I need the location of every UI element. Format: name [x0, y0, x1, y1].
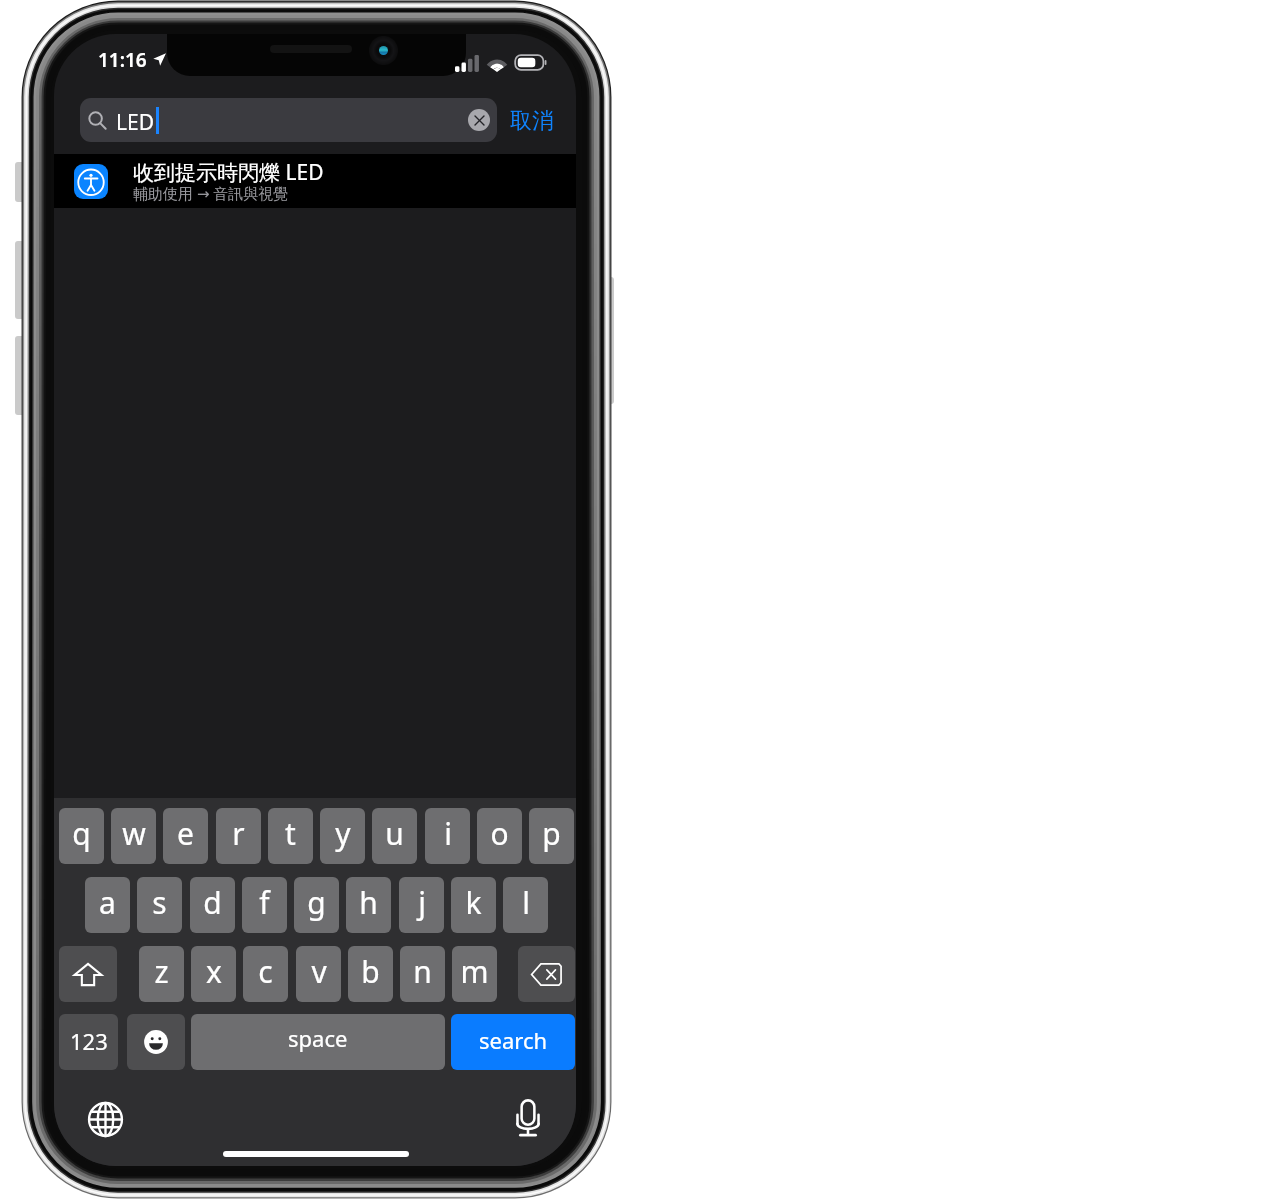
staticText: 123 [70, 1026, 108, 1056]
staticText: h [359, 882, 378, 923]
button[interactable]: u [372, 808, 417, 864]
button[interactable]: Backspace [518, 946, 575, 1002]
staticText: i [444, 813, 452, 854]
staticText: n [413, 951, 432, 992]
button[interactable]: 收到提示時閃爍 LED [54, 154, 576, 208]
button[interactable]: space [191, 1014, 445, 1070]
button[interactable]: t [268, 808, 313, 864]
button[interactable]: 123 [59, 1014, 118, 1070]
staticText: e [177, 813, 194, 854]
button[interactable]: x [191, 946, 236, 1002]
button[interactable]: Emoji keyboard [127, 1014, 185, 1070]
button[interactable]: a [85, 877, 130, 933]
button[interactable]: q [59, 808, 104, 864]
button[interactable]: d [190, 877, 235, 933]
staticText: 取消 [510, 107, 554, 135]
button[interactable]: b [348, 946, 393, 1002]
button[interactable]: p [529, 808, 574, 864]
staticText: m [460, 951, 489, 992]
staticText: p [542, 813, 561, 854]
button[interactable]: n [400, 946, 445, 1002]
button[interactable]: z [139, 946, 184, 1002]
button[interactable]: e [163, 808, 208, 864]
staticText: f [259, 882, 270, 923]
button[interactable]: w [111, 808, 156, 864]
staticText: LED [116, 108, 155, 137]
staticText: o [490, 813, 509, 854]
button[interactable]: m [452, 946, 497, 1002]
button[interactable]: g [294, 877, 339, 933]
staticText: v [311, 951, 327, 992]
staticText: l [522, 882, 530, 923]
staticText: r [232, 813, 245, 854]
staticText: q [72, 813, 91, 854]
button[interactable]: Dictation [508, 1098, 548, 1138]
staticText: a [99, 882, 116, 923]
staticText: c [258, 951, 273, 992]
button[interactable]: i [425, 808, 470, 864]
staticText: space [288, 1023, 348, 1053]
staticText: j [418, 882, 426, 923]
staticText: t [285, 813, 296, 854]
staticText: u [385, 813, 404, 854]
button[interactable]: y [320, 808, 365, 864]
button[interactable]: Clear text [468, 109, 490, 131]
button[interactable]: s [137, 877, 182, 933]
button[interactable]: r [216, 808, 261, 864]
staticText: d [203, 882, 222, 923]
staticText: s [152, 882, 167, 923]
staticText: 收到提示時閃爍 LED [133, 158, 324, 187]
button[interactable]: v [296, 946, 341, 1002]
button[interactable]: search [451, 1014, 575, 1070]
staticText: x [206, 951, 222, 992]
staticText: k [465, 882, 482, 923]
button[interactable]: f [242, 877, 287, 933]
staticText: w [122, 813, 146, 854]
staticText: g [307, 882, 326, 923]
staticText: y [335, 813, 351, 854]
button[interactable]: 取消 [504, 98, 560, 142]
button[interactable]: Change keyboard language [85, 1099, 125, 1139]
button[interactable]: c [243, 946, 288, 1002]
staticText: 11:16 [98, 47, 147, 73]
button[interactable]: Shift [59, 946, 117, 1002]
staticText: z [154, 951, 169, 992]
button[interactable]: l [503, 877, 548, 933]
button[interactable]: j [399, 877, 444, 933]
button[interactable]: k [451, 877, 496, 933]
button[interactable]: o [477, 808, 522, 864]
button[interactable]: LED [80, 98, 497, 142]
staticText: 輔助使用 → 音訊與視覺 [133, 183, 289, 203]
staticText: search [479, 1025, 548, 1055]
staticText: b [361, 951, 380, 992]
button[interactable]: h [346, 877, 391, 933]
